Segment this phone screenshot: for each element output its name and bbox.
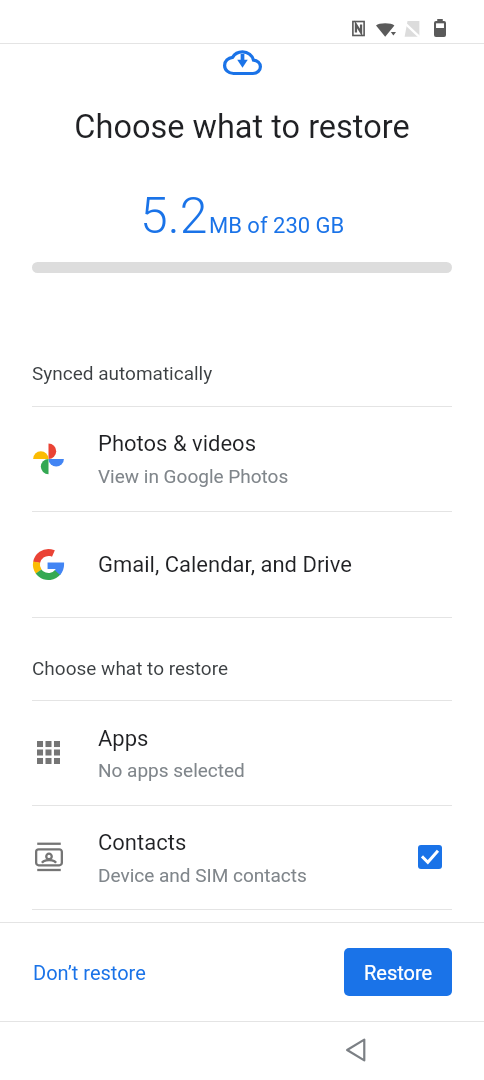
staticText: No apps selected: [98, 759, 245, 781]
button[interactable]: Restore: [344, 948, 452, 996]
button[interactable]: Gmail, Calendar, and Drive: [0, 511, 484, 617]
button[interactable]: Apps: [0, 700, 484, 805]
staticText: Restore: [364, 961, 433, 984]
staticText: Synced automatically: [32, 362, 213, 384]
staticText: Apps: [98, 726, 149, 752]
staticText: View in Google Photos: [98, 465, 289, 487]
button[interactable]: Contacts: [0, 805, 484, 909]
button[interactable]: Back: [333, 1026, 381, 1074]
staticText: Don’t restore: [33, 961, 146, 984]
button[interactable]: Don’t restore: [21, 953, 158, 992]
staticText: Choose what to restore: [32, 657, 229, 679]
staticText: 5.2: [140, 187, 208, 246]
staticText: Choose what to restore: [0, 108, 484, 146]
button[interactable]: Photos & videos: [0, 406, 484, 511]
staticText: Contacts: [98, 830, 187, 856]
staticText: MB of 230 GB: [209, 213, 345, 239]
staticText: Gmail, Calendar, and Drive: [98, 552, 352, 578]
staticText: Photos & videos: [98, 431, 257, 457]
button[interactable]: Contacts checkbox: [418, 845, 442, 869]
staticText: Device and SIM contacts: [98, 864, 307, 886]
